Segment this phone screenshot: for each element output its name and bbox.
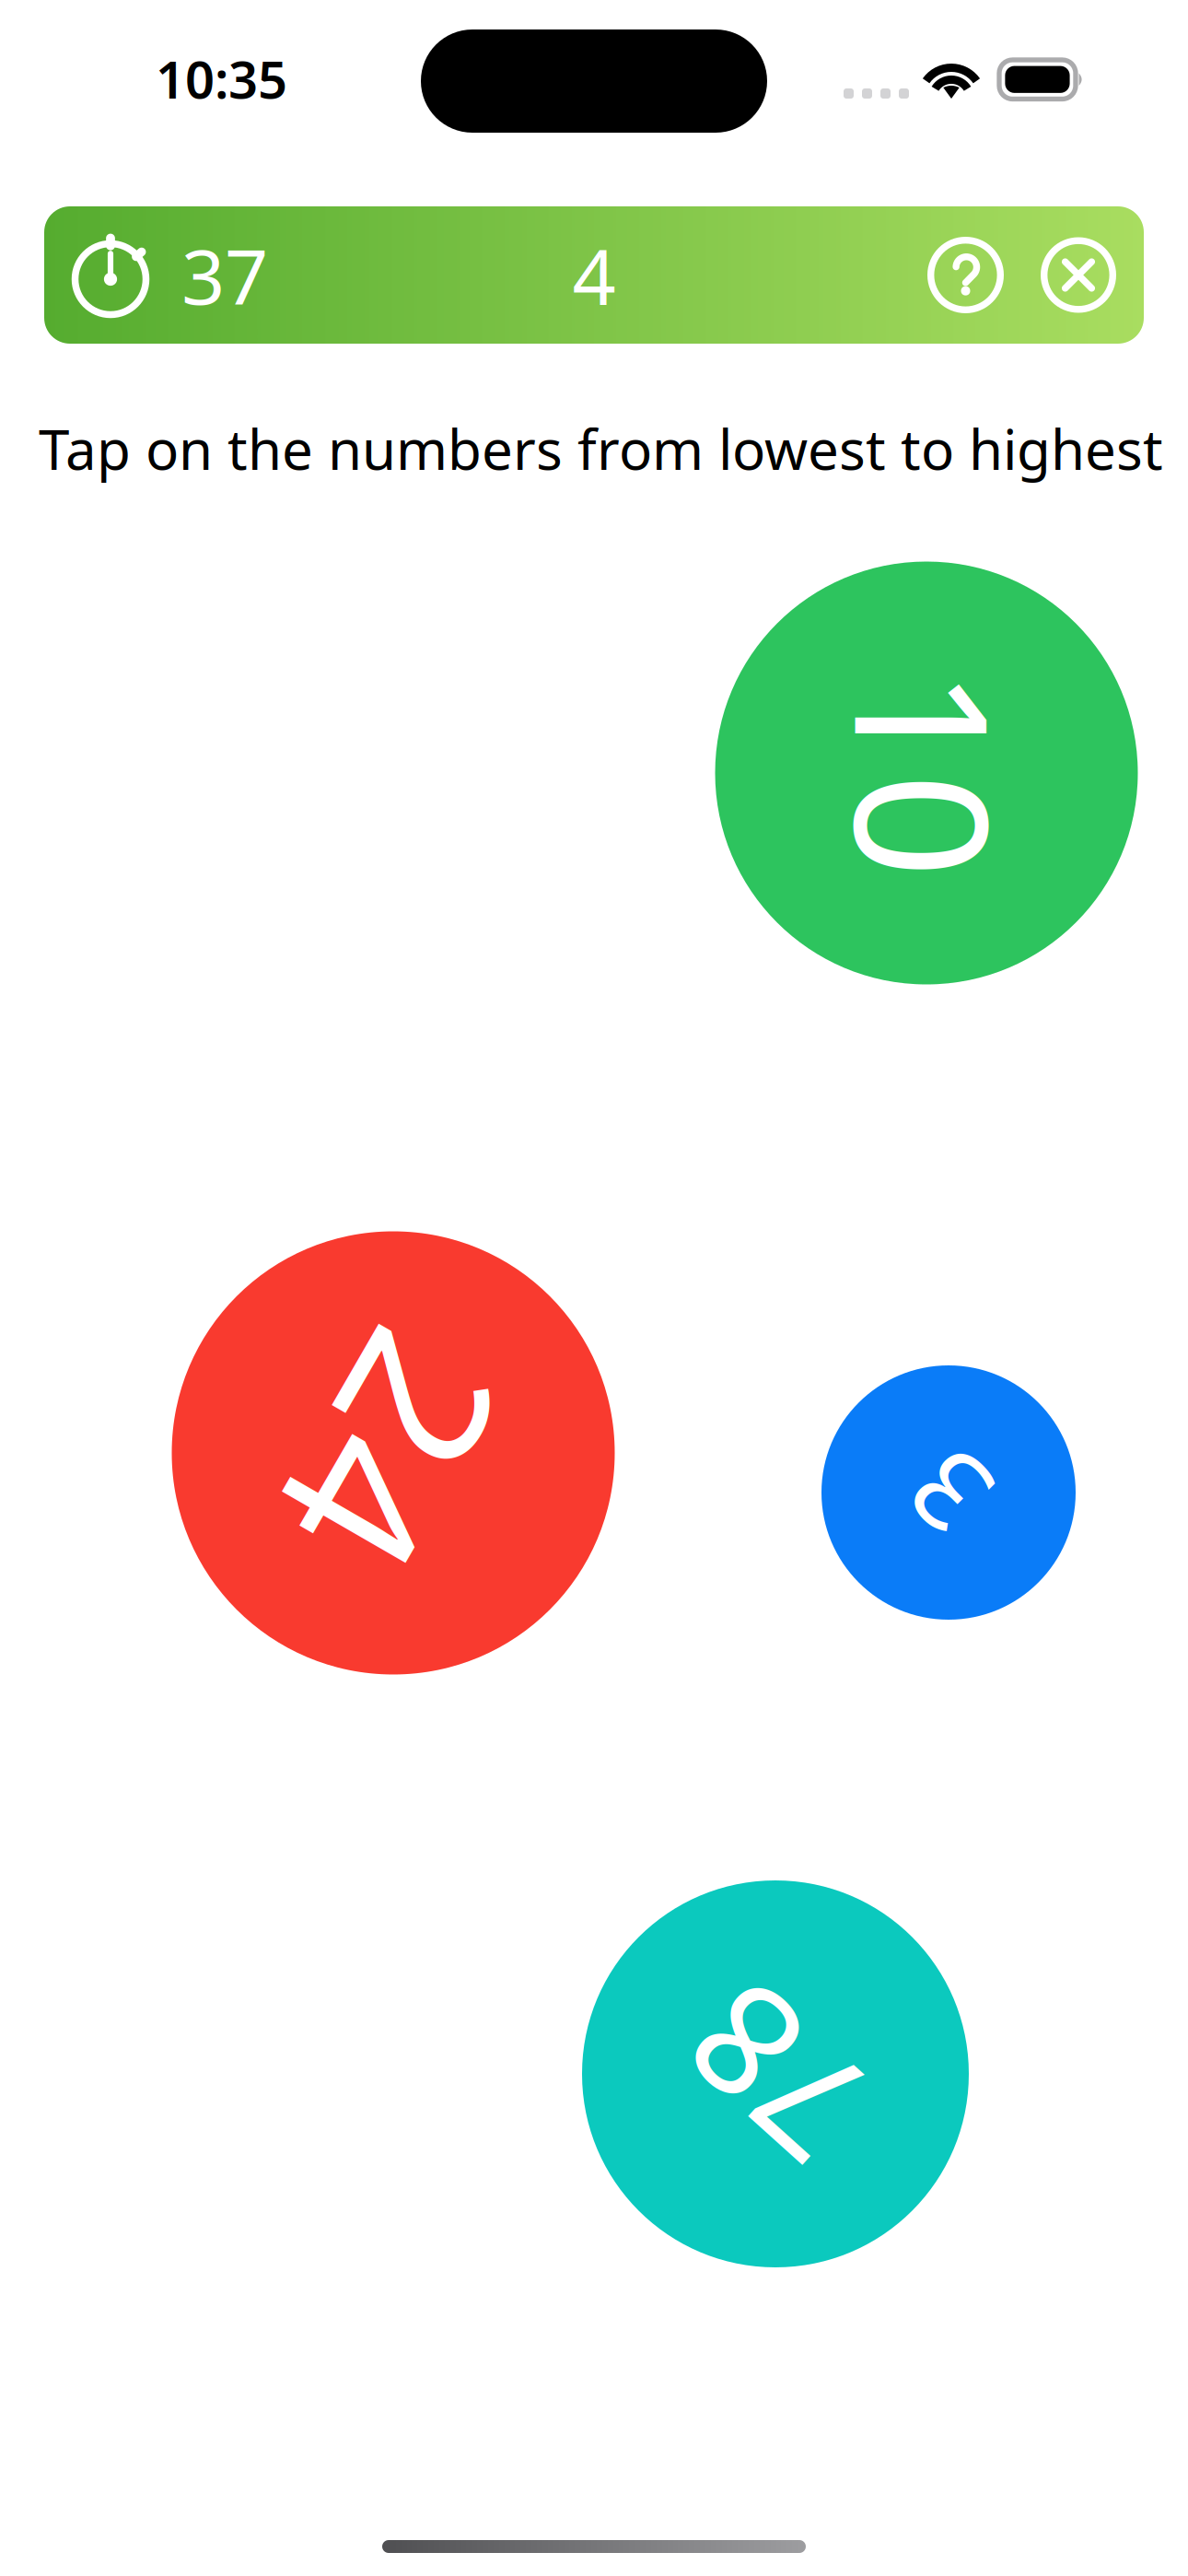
button[interactable]: Close	[1041, 237, 1116, 313]
staticText: 4	[572, 224, 616, 326]
button[interactable]: 3	[821, 1365, 1076, 1620]
staticText: 10	[821, 651, 1031, 895]
button[interactable]: 78	[582, 1880, 969, 2267]
button[interactable]: Help	[927, 237, 1004, 313]
staticText: 78	[688, 1973, 863, 2175]
staticText: 10:35	[156, 44, 287, 113]
staticText: 37	[181, 224, 268, 326]
staticText: Tap on the numbers from lowest to highes…	[39, 412, 1163, 485]
button[interactable]: 10	[715, 562, 1138, 984]
staticText: 3	[917, 1420, 980, 1565]
staticText: 24	[279, 1321, 507, 1585]
button[interactable]: 24	[172, 1231, 615, 1674]
